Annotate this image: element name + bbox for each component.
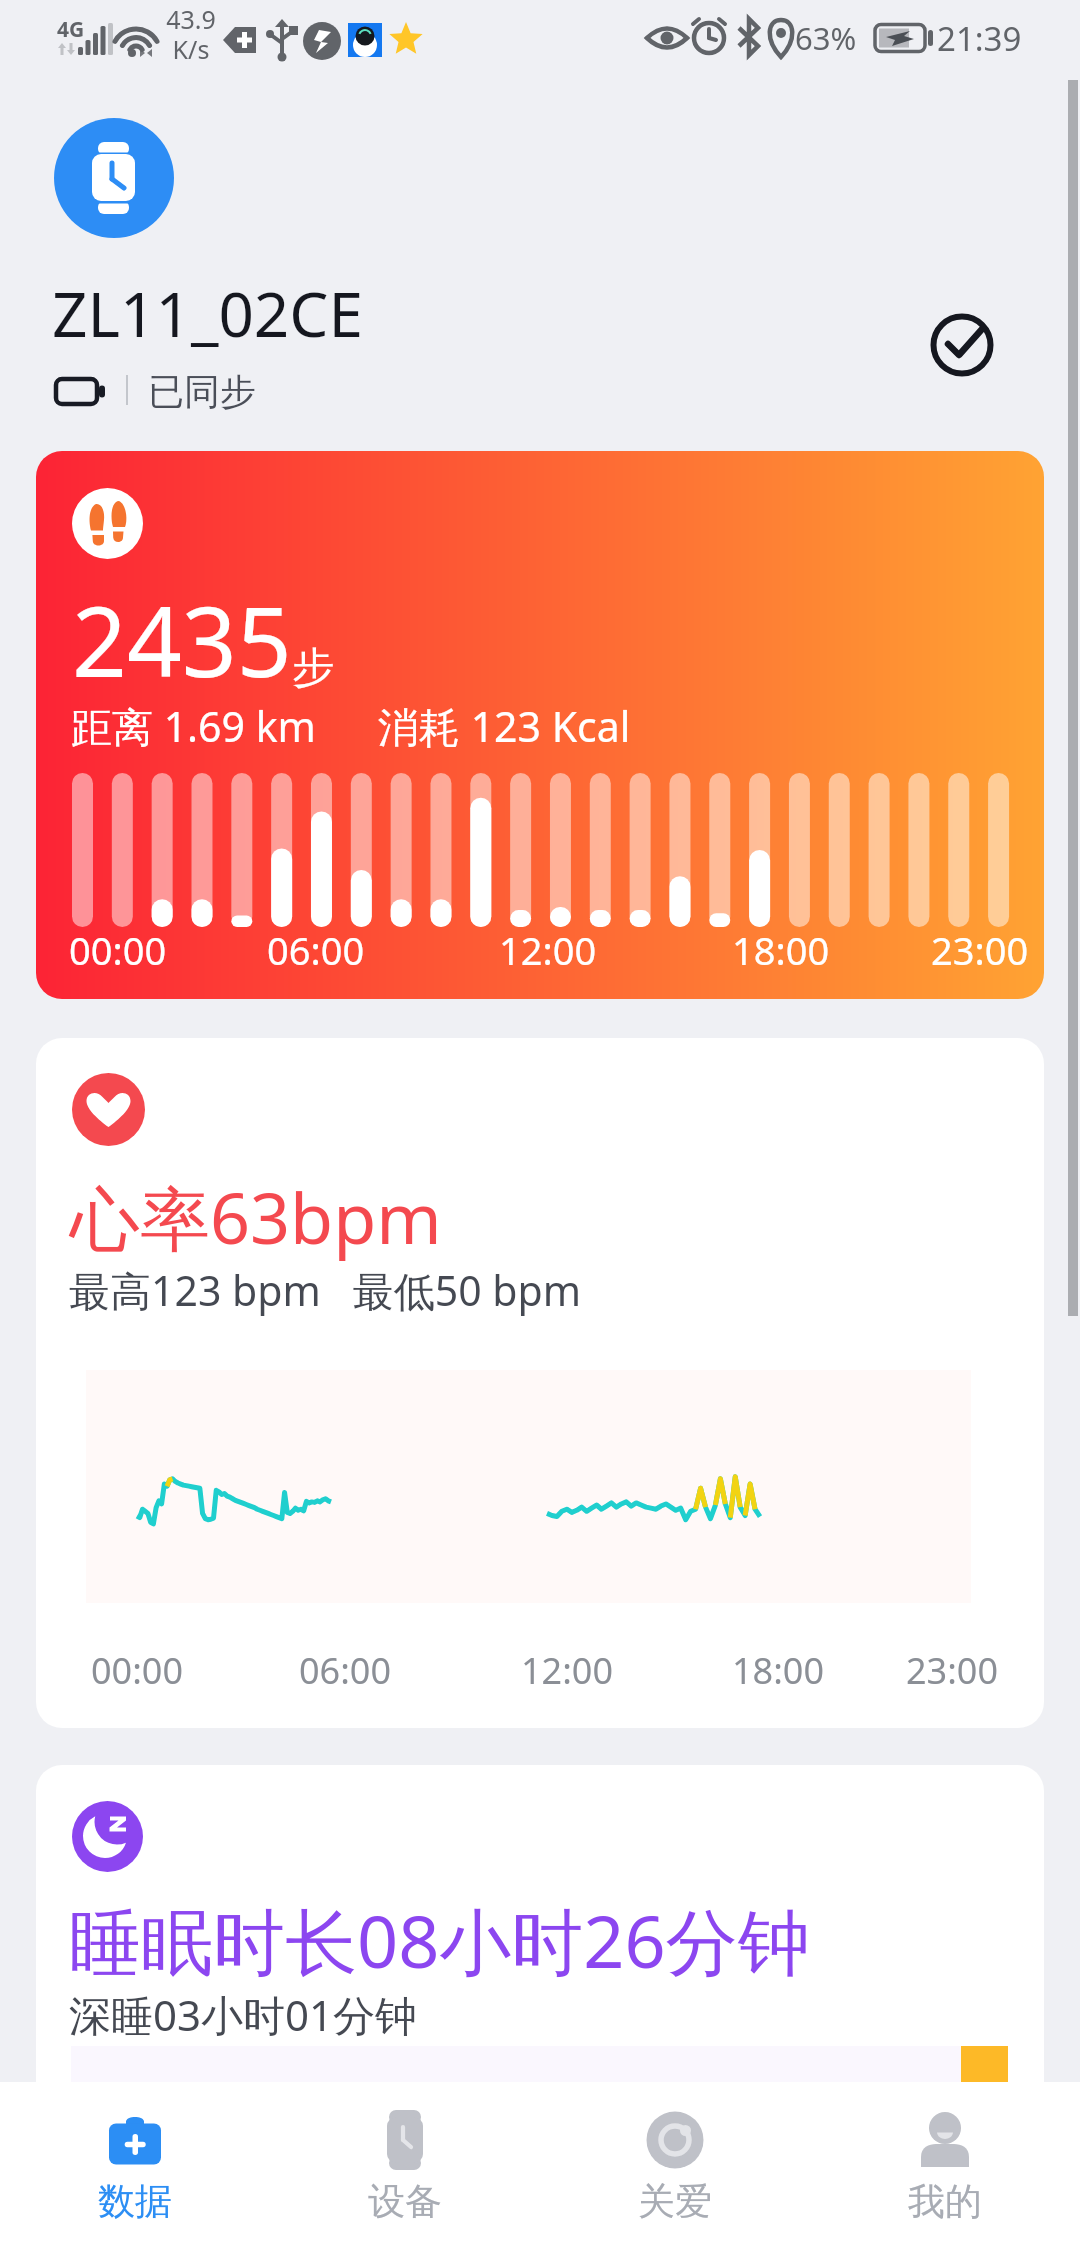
staticText: 睡眠时长08小时26分钟 [69, 1891, 810, 1989]
staticText: 00:00 [91, 1646, 184, 1695]
staticText: 关爱 [638, 2178, 712, 2225]
staticText: 步 [292, 642, 334, 695]
staticText: 已同步 [148, 369, 256, 414]
staticText: 23:00 [906, 1646, 999, 1695]
staticText: 深睡03小时01分钟 [69, 1986, 418, 2043]
button[interactable]: 关爱 [540, 2082, 810, 2244]
staticText: 21:39 [937, 16, 1022, 61]
button[interactable]: 睡眠时长08小时26分钟 [36, 1765, 1044, 2185]
staticText: 18:00 [732, 1646, 825, 1695]
button[interactable]: 我的 [810, 2082, 1080, 2244]
staticText: 消耗 123 Kcal [378, 698, 631, 754]
staticText: 00:00 [69, 924, 167, 976]
staticText: 43.9 K/s [166, 2, 216, 67]
staticText: 距离 1.69 km [71, 698, 316, 754]
staticText: 我的 [908, 2178, 982, 2225]
staticText: 06:00 [299, 1646, 392, 1695]
staticText: 2435 [72, 574, 292, 705]
staticText: 18:00 [732, 924, 830, 976]
staticText: 心率63bpm [70, 1169, 442, 1265]
button[interactable]: 设备 [270, 2082, 540, 2244]
staticText: 06:00 [267, 924, 365, 976]
button[interactable]: 2435 [36, 451, 1044, 999]
staticText: 数据 [98, 2178, 172, 2225]
staticText: 最高123 bpm 最低50 bpm [69, 1262, 582, 1318]
button[interactable]: 数据 [0, 2082, 270, 2244]
staticText: ZL11_02CE [52, 271, 363, 355]
staticText: 设备 [368, 2178, 442, 2225]
button[interactable]: Synced [915, 298, 1010, 393]
button[interactable]: 心率63bpm [36, 1038, 1044, 1728]
staticText: 12:00 [521, 1646, 614, 1695]
staticText: 63% [795, 17, 857, 59]
button[interactable]: Device [54, 118, 174, 238]
staticText: 23:00 [931, 924, 1029, 976]
staticText: 12:00 [499, 924, 597, 976]
staticText: 4G [57, 15, 85, 44]
